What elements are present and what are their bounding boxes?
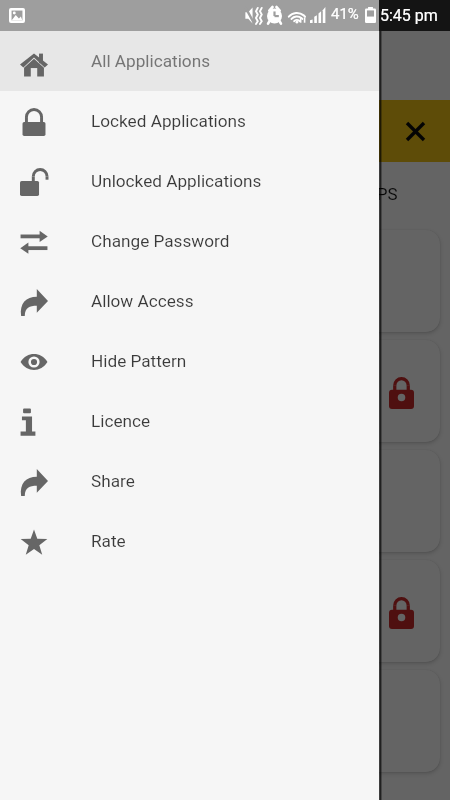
- staticText: All Applications: [91, 51, 211, 71]
- button[interactable]: [120, 340, 222, 442]
- staticText: Unlocked Applications: [91, 171, 262, 191]
- staticText: 41%: [331, 5, 359, 23]
- button[interactable]: [340, 340, 440, 442]
- staticText: Locked Applications: [91, 111, 246, 131]
- button[interactable]: Close: [403, 119, 427, 143]
- staticText: Hide Pattern: [91, 351, 187, 371]
- staticText: Share: [91, 471, 135, 491]
- button[interactable]: [120, 450, 222, 552]
- button[interactable]: [340, 230, 440, 332]
- button[interactable]: Licence: [0, 391, 379, 451]
- staticText: Licence: [91, 411, 151, 431]
- button[interactable]: Allow Access: [0, 271, 379, 331]
- button[interactable]: Unlocked Applications: [0, 151, 379, 211]
- button[interactable]: Change Password: [0, 211, 379, 271]
- staticText: Rate: [91, 531, 126, 551]
- button[interactable]: [340, 670, 440, 772]
- button[interactable]: [340, 560, 440, 662]
- staticText: Change Password: [91, 231, 230, 251]
- button[interactable]: [10, 450, 112, 552]
- button[interactable]: [10, 340, 112, 442]
- staticText: APPS: [355, 184, 398, 204]
- button[interactable]: Rate: [0, 511, 379, 571]
- button[interactable]: [340, 450, 440, 552]
- button[interactable]: [120, 230, 222, 332]
- staticText: Allow Access: [91, 291, 194, 311]
- staticText: 5:45 pm: [380, 6, 438, 25]
- button[interactable]: Locked Applications: [0, 91, 379, 151]
- button[interactable]: [10, 230, 112, 332]
- button[interactable]: All Applications: [0, 31, 379, 91]
- button[interactable]: Hide Pattern: [0, 331, 379, 391]
- button[interactable]: Share: [0, 451, 379, 511]
